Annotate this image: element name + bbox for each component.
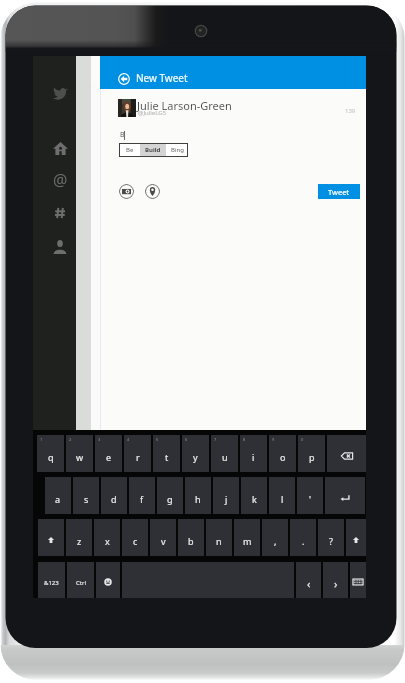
button[interactable]: 1 bbox=[37, 435, 64, 472]
button[interactable]: f bbox=[129, 477, 155, 514]
staticText: o bbox=[280, 451, 286, 463]
button[interactable]: 3 bbox=[95, 435, 122, 472]
button[interactable]: Enter bbox=[325, 477, 365, 514]
staticText: r bbox=[136, 451, 140, 463]
staticText: 1 bbox=[40, 437, 43, 442]
staticText: x bbox=[105, 535, 110, 547]
button[interactable]: l bbox=[269, 477, 295, 514]
staticText: 8 bbox=[243, 437, 246, 442]
button[interactable]: 6 bbox=[182, 435, 209, 472]
staticText: Bing bbox=[171, 146, 184, 154]
staticText: ? bbox=[329, 535, 333, 547]
button[interactable]: n bbox=[206, 519, 232, 556]
button[interactable]: b bbox=[178, 519, 204, 556]
button[interactable]: 9 bbox=[269, 435, 296, 472]
other: Back bbox=[118, 73, 130, 85]
button[interactable]: Back bbox=[100, 56, 366, 89]
button[interactable]: 4 bbox=[124, 435, 151, 472]
staticText: q bbox=[48, 451, 54, 463]
staticText: 0 bbox=[301, 437, 304, 442]
button[interactable]: . bbox=[290, 519, 316, 556]
button[interactable]: h bbox=[185, 477, 211, 514]
staticText: @ bbox=[53, 169, 68, 191]
staticText: s bbox=[84, 493, 89, 505]
staticText: 4 bbox=[127, 437, 130, 442]
button[interactable]: ? bbox=[318, 519, 344, 556]
button[interactable]: d bbox=[101, 477, 127, 514]
button[interactable]: Up bbox=[346, 519, 366, 556]
button[interactable]: Emoji bbox=[96, 562, 120, 598]
staticText: Julie Larson-Green bbox=[137, 98, 232, 113]
staticText: 139 bbox=[345, 107, 356, 115]
button[interactable]: 0 bbox=[298, 435, 325, 472]
button[interactable]: j bbox=[213, 477, 239, 514]
staticText: u bbox=[222, 451, 228, 463]
staticText: 5 bbox=[156, 437, 159, 442]
staticText: , bbox=[274, 535, 277, 547]
button[interactable]: 2 bbox=[66, 435, 93, 472]
staticText: B bbox=[120, 130, 125, 140]
staticText: v bbox=[161, 535, 166, 547]
staticText: l bbox=[281, 493, 284, 505]
button[interactable]: 5 bbox=[153, 435, 180, 472]
staticText: i bbox=[252, 451, 255, 463]
button[interactable]: Home bbox=[47, 136, 74, 161]
staticText: w bbox=[76, 451, 84, 463]
staticText: New Tweet bbox=[136, 71, 188, 85]
button[interactable]: Me bbox=[47, 235, 73, 259]
staticText: &123 bbox=[44, 579, 59, 587]
staticText: j bbox=[225, 493, 228, 505]
button[interactable]: Shift bbox=[38, 519, 64, 556]
button[interactable]: g bbox=[157, 477, 183, 514]
staticText: Ctrl bbox=[76, 579, 86, 587]
button[interactable]: Mentions bbox=[47, 168, 73, 192]
staticText: b bbox=[188, 535, 194, 547]
button[interactable]: 7 bbox=[211, 435, 238, 472]
button[interactable]: a bbox=[45, 477, 71, 514]
staticText: c bbox=[133, 535, 138, 547]
button[interactable]: Add photo bbox=[119, 184, 134, 199]
staticText: y bbox=[193, 451, 198, 463]
button[interactable]: Backspace bbox=[327, 435, 366, 472]
button[interactable]: Ctrl bbox=[67, 562, 94, 598]
button[interactable]: Twitter bbox=[47, 81, 74, 106]
staticText: Be bbox=[126, 146, 134, 154]
button[interactable]: Right bbox=[323, 562, 348, 598]
staticText: ' bbox=[309, 493, 312, 505]
staticText: ‹ bbox=[307, 576, 311, 591]
staticText: m bbox=[243, 535, 252, 547]
button[interactable]: m bbox=[234, 519, 260, 556]
staticText: 2 bbox=[69, 437, 72, 442]
button[interactable]: Be bbox=[119, 143, 140, 157]
staticText: p bbox=[309, 451, 315, 463]
staticText: z bbox=[77, 535, 82, 547]
button[interactable]: Build bbox=[140, 143, 166, 157]
button[interactable]: Hide keyboard bbox=[350, 562, 366, 598]
button[interactable]: 8 bbox=[240, 435, 267, 472]
staticText: . bbox=[302, 535, 305, 547]
button[interactable]: Bing bbox=[166, 143, 188, 157]
staticText: Build bbox=[145, 146, 161, 154]
staticText: @JulieLG5 bbox=[138, 109, 167, 117]
staticText: 3 bbox=[98, 437, 101, 442]
button[interactable]: x bbox=[94, 519, 120, 556]
button[interactable]: v bbox=[150, 519, 176, 556]
staticText: 7 bbox=[214, 437, 217, 442]
button[interactable]: k bbox=[241, 477, 267, 514]
button[interactable]: Add location bbox=[145, 184, 160, 199]
staticText: k bbox=[252, 493, 257, 505]
staticText: n bbox=[216, 535, 222, 547]
button[interactable]: &123 bbox=[38, 562, 65, 598]
staticText: 6 bbox=[185, 437, 188, 442]
button[interactable]: Discover bbox=[47, 201, 73, 225]
button[interactable]: ' bbox=[297, 477, 323, 514]
button[interactable]: c bbox=[122, 519, 148, 556]
button[interactable]: Tweet bbox=[318, 184, 360, 199]
staticText: d bbox=[111, 493, 117, 505]
button[interactable]: z bbox=[66, 519, 92, 556]
staticText: g bbox=[167, 493, 173, 505]
button[interactable]: Left bbox=[296, 562, 321, 598]
button[interactable]: , bbox=[262, 519, 288, 556]
button[interactable]: s bbox=[73, 477, 99, 514]
